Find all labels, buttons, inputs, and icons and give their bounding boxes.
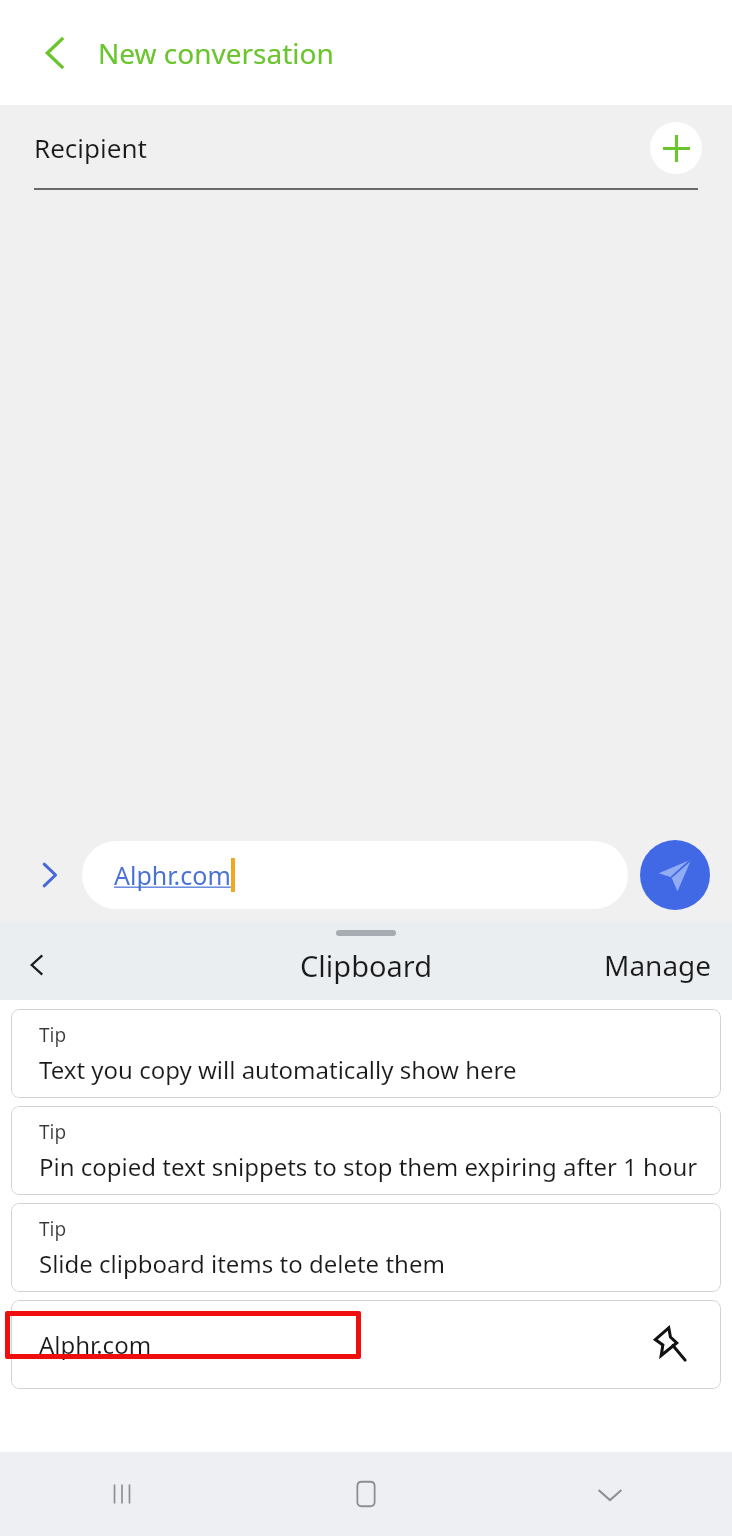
- staticText: Tip: [39, 1216, 67, 1242]
- staticText: Text you copy will automatically show he…: [39, 1053, 517, 1086]
- button[interactable]: Back: [28, 25, 84, 81]
- staticText: Slide clipboard items to delete them: [39, 1247, 445, 1280]
- button[interactable]: Back: [488, 1452, 732, 1536]
- staticText: Clipboard: [300, 946, 433, 985]
- staticText: Tip: [39, 1022, 67, 1048]
- staticText: Recipient: [34, 130, 147, 165]
- button[interactable]: Add recipient: [650, 122, 702, 174]
- button[interactable]: Send: [640, 840, 710, 910]
- button[interactable]: Pin: [645, 1320, 695, 1370]
- button[interactable]: Recents: [0, 1452, 244, 1536]
- staticText: Tip: [39, 1119, 67, 1145]
- staticText: Pin copied text snippets to stop them ex…: [39, 1150, 698, 1183]
- button[interactable]: Expand: [20, 846, 78, 904]
- staticText: Alphr.com: [39, 1328, 152, 1361]
- button[interactable]: Alphr.com: [82, 841, 628, 909]
- button[interactable]: Tip: [11, 1203, 721, 1292]
- staticText: Manage: [604, 946, 712, 984]
- button[interactable]: Manage: [594, 938, 722, 992]
- staticText: New conversation: [98, 34, 334, 72]
- button[interactable]: Alphr.com: [11, 1300, 721, 1389]
- staticText: Alphr.com: [114, 858, 231, 892]
- button[interactable]: Home: [244, 1452, 488, 1536]
- button[interactable]: Tip: [11, 1106, 721, 1195]
- button[interactable]: Tip: [11, 1009, 721, 1098]
- button[interactable]: Back: [10, 938, 64, 992]
